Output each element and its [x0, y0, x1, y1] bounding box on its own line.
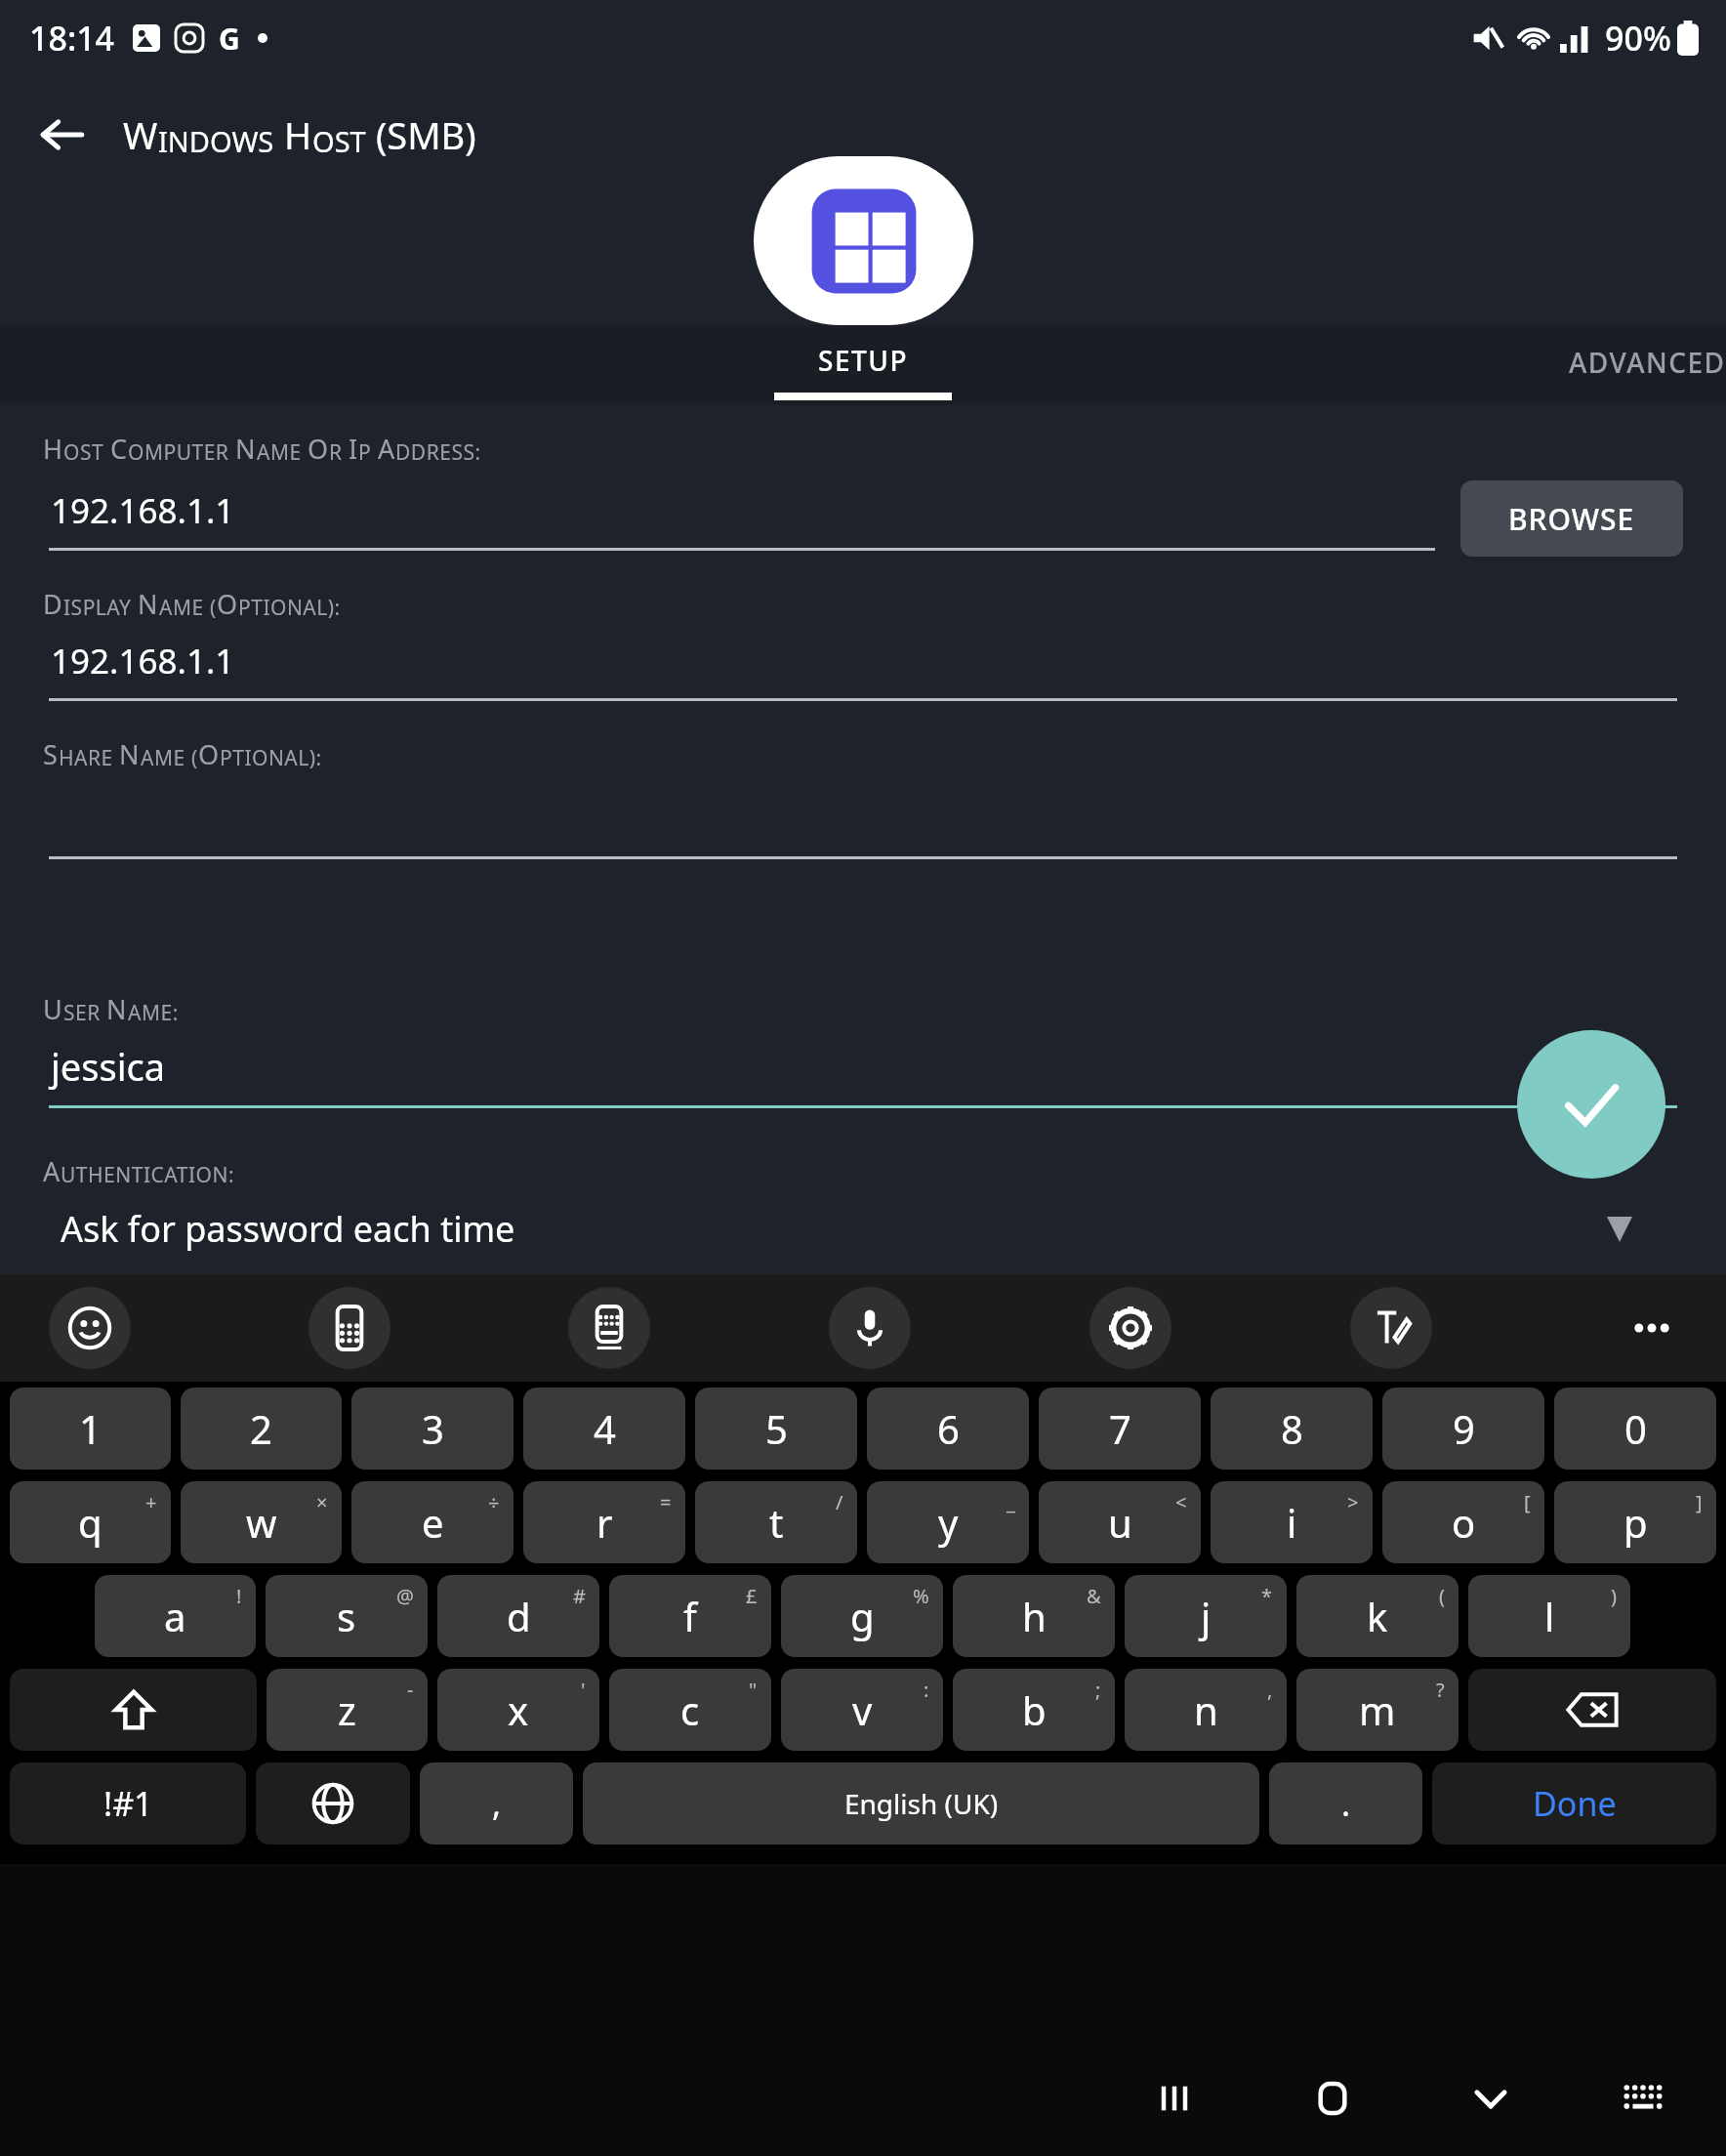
button[interactable]: u — [1039, 1481, 1201, 1563]
button[interactable]: p — [1554, 1481, 1716, 1563]
button[interactable]: Shift — [10, 1669, 257, 1751]
button[interactable]: h — [953, 1575, 1115, 1657]
button[interactable]: a — [95, 1575, 256, 1657]
staticText: p — [1623, 1496, 1648, 1549]
button[interactable]: l — [1468, 1575, 1630, 1657]
staticText: P — [358, 438, 372, 467]
button[interactable]: b — [953, 1669, 1115, 1751]
staticText: AME — [141, 744, 185, 772]
button[interactable]: 9 — [1382, 1388, 1544, 1470]
button[interactable]: f — [609, 1575, 771, 1657]
button[interactable]: Ask for password each time — [0, 1205, 1726, 1253]
button[interactable]: 3 — [351, 1388, 514, 1470]
button[interactable]: Settings — [1089, 1287, 1171, 1369]
staticText: 0 — [1624, 1402, 1647, 1455]
button[interactable]: n — [1125, 1669, 1287, 1751]
staticText: SER — [63, 999, 101, 1027]
button[interactable]: w — [181, 1481, 342, 1563]
staticText: W — [123, 109, 158, 160]
button[interactable]: Backspace — [1468, 1669, 1716, 1751]
staticText: d — [507, 1590, 531, 1642]
button[interactable]: 1 — [10, 1388, 171, 1470]
staticText: O — [217, 586, 238, 622]
staticText: ÷ — [488, 1489, 500, 1515]
staticText: 4 — [594, 1402, 616, 1455]
button[interactable]: o — [1382, 1481, 1544, 1563]
button[interactable]: More options — [1611, 1287, 1693, 1369]
button[interactable]: Voice input — [829, 1287, 911, 1369]
button[interactable]: Keyboard — [568, 1287, 650, 1369]
staticText: N — [235, 431, 257, 467]
staticText: C — [110, 431, 128, 467]
staticText: U — [43, 991, 63, 1027]
button[interactable]: 5 — [695, 1388, 857, 1470]
button[interactable]: Switch keyboard — [1599, 2054, 1687, 2142]
staticText: y — [938, 1496, 959, 1549]
other: Backspace — [1468, 1669, 1716, 1751]
button[interactable]: 8 — [1211, 1388, 1373, 1470]
button[interactable]: k — [1296, 1575, 1459, 1657]
staticText: @ — [396, 1583, 414, 1609]
button[interactable]: Handwriting — [1350, 1287, 1432, 1369]
button[interactable]: c — [609, 1669, 771, 1751]
button[interactable]: 0 — [1554, 1388, 1716, 1470]
button[interactable]: q — [10, 1481, 171, 1563]
button[interactable]: BROWSE — [1460, 480, 1683, 557]
button[interactable]: ADVANCED — [1530, 325, 1726, 405]
button[interactable]: 7 — [1039, 1388, 1201, 1470]
button[interactable]: y — [867, 1481, 1029, 1563]
button[interactable]: i — [1211, 1481, 1373, 1563]
button[interactable]: d — [437, 1575, 599, 1657]
button[interactable]: , — [420, 1762, 573, 1845]
staticText: ( — [210, 594, 217, 622]
button[interactable]: English (UK) — [583, 1762, 1259, 1845]
button[interactable]: z — [267, 1669, 428, 1751]
button[interactable]: . — [1269, 1762, 1422, 1845]
button[interactable]: t — [695, 1481, 857, 1563]
staticText: h — [1022, 1590, 1047, 1642]
staticText: 3 — [422, 1402, 444, 1455]
staticText: 192.168.1.1 — [51, 487, 235, 534]
button[interactable]: j — [1125, 1575, 1287, 1657]
staticText: O — [308, 431, 329, 467]
button[interactable]: !#1 — [10, 1762, 246, 1845]
button[interactable]: v — [781, 1669, 943, 1751]
button[interactable]: Emoji — [49, 1287, 131, 1369]
button[interactable]: Home — [1289, 2054, 1377, 2142]
button[interactable]: r — [523, 1481, 685, 1563]
staticText: £ — [746, 1583, 758, 1609]
button[interactable]: Hide keyboard — [1447, 2054, 1535, 2142]
staticText: (SMB) — [366, 109, 476, 160]
button[interactable]: m — [1296, 1669, 1459, 1751]
staticText: r — [596, 1496, 613, 1549]
button[interactable]: 4 — [523, 1388, 685, 1470]
button[interactable]: Back — [25, 98, 100, 172]
button[interactable]: Confirm — [1517, 1030, 1665, 1179]
staticText: 7 — [1109, 1402, 1131, 1455]
staticText: t — [769, 1496, 784, 1549]
staticText: . — [1341, 1781, 1351, 1826]
staticText: 2 — [250, 1402, 272, 1455]
button[interactable]: Recents — [1130, 2054, 1218, 2142]
staticText: [ — [1524, 1489, 1531, 1515]
staticText: i — [1287, 1496, 1297, 1549]
staticText: < — [1175, 1489, 1187, 1515]
staticText: A — [378, 431, 395, 467]
button[interactable]: Done — [1432, 1762, 1716, 1845]
staticText: !#1 — [103, 1781, 153, 1826]
button[interactable]: Change language — [256, 1762, 410, 1845]
staticText: 192.168.1.1 — [51, 638, 235, 684]
staticText: u — [1108, 1496, 1132, 1549]
button[interactable]: x — [437, 1669, 599, 1751]
button[interactable]: Number pad — [308, 1287, 390, 1369]
button[interactable]: e — [351, 1481, 514, 1563]
button[interactable]: s — [266, 1575, 428, 1657]
button[interactable]: SETUP — [707, 325, 1019, 405]
button[interactable]: g — [781, 1575, 943, 1657]
button[interactable]: 6 — [867, 1388, 1029, 1470]
button[interactable]: 2 — [181, 1388, 342, 1470]
staticText: / — [836, 1489, 843, 1515]
